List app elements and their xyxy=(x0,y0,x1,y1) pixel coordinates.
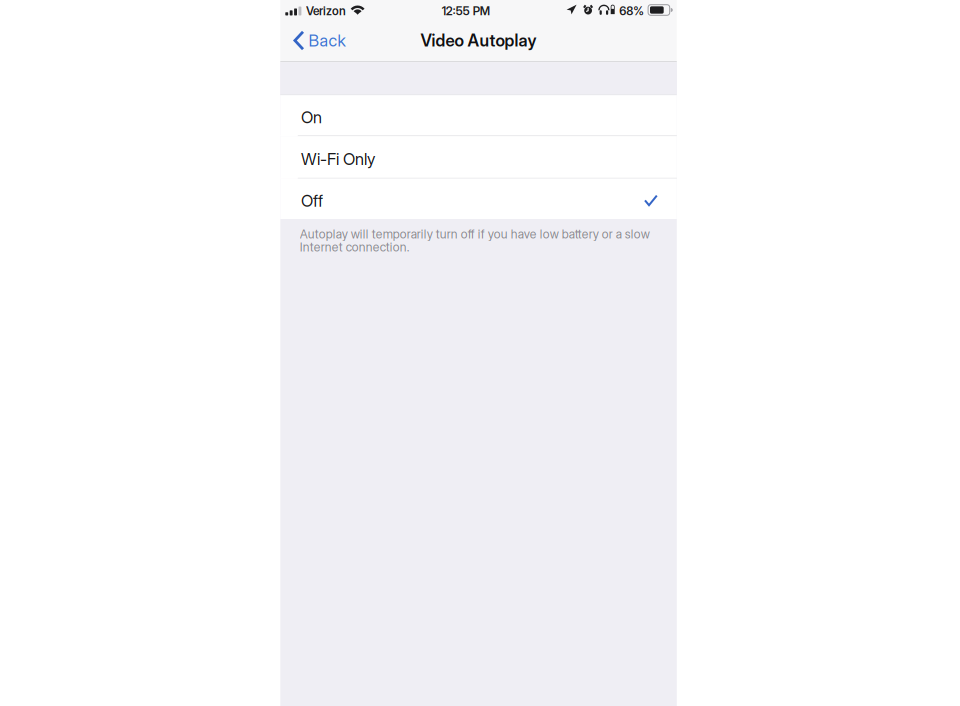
button[interactable]: On xyxy=(280,95,677,136)
button[interactable]: Wi-Fi Only xyxy=(280,136,677,179)
staticText: 12:55 PM xyxy=(442,4,490,18)
staticText: Autoplay will temporarily turn off if yo… xyxy=(300,226,650,241)
staticText: Off xyxy=(301,191,323,211)
staticText: On xyxy=(301,107,322,127)
staticText: 68% xyxy=(619,4,644,18)
button[interactable]: Back xyxy=(280,22,355,61)
staticText: Video Autoplay xyxy=(421,30,537,50)
staticText: Verizon xyxy=(306,4,346,18)
button[interactable]: Off xyxy=(280,179,677,219)
staticText: Internet connection. xyxy=(300,239,410,254)
staticText: Back xyxy=(308,30,345,50)
staticText: Wi-Fi Only xyxy=(301,149,375,169)
